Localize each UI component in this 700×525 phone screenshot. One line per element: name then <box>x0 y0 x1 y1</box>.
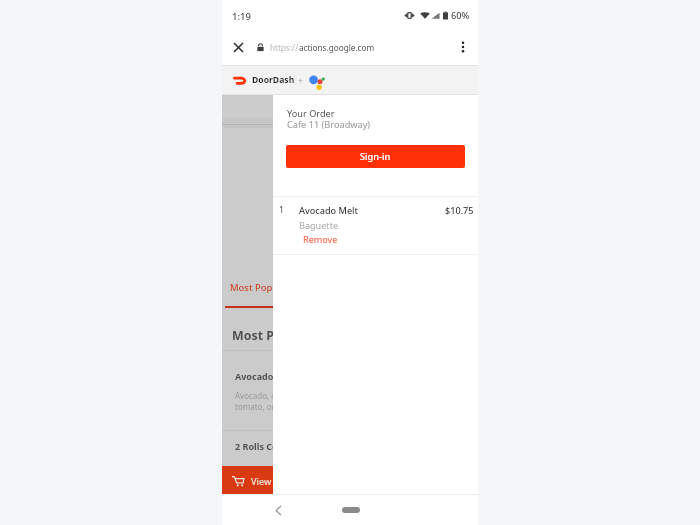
staticText: Most Popular <box>232 327 283 344</box>
staticText: + <box>298 74 304 86</box>
staticText: View Order <box>251 475 273 487</box>
staticText: Avocado Melt <box>299 204 359 216</box>
staticText: 60% <box>451 9 470 22</box>
staticText: Most Popular <box>230 281 281 294</box>
staticText: Baguette <box>299 219 339 231</box>
button[interactable]: Sign-in <box>286 145 465 168</box>
button[interactable]: Home <box>342 507 360 513</box>
button[interactable]: View Order <box>222 466 273 495</box>
staticText: $10.75 <box>445 204 474 216</box>
staticText: actions.google.com <box>299 42 375 53</box>
staticText: Your Order <box>287 107 335 120</box>
button[interactable]: Close <box>227 36 249 58</box>
staticText: 1:19 <box>232 10 251 23</box>
staticText: Sign-in <box>360 150 391 163</box>
staticText: Cafe 11 (Broadway) <box>287 118 371 131</box>
button[interactable]: Back <box>268 500 288 520</box>
staticText: 1 <box>279 204 285 216</box>
staticText: https:// <box>270 42 299 53</box>
staticText: Avocado Melt <box>235 370 286 382</box>
staticText: tomato, onion <box>235 401 286 412</box>
staticText: DoorDash <box>252 74 295 86</box>
staticText: Avocado, cheddar, <box>235 390 286 401</box>
staticText: 2 Rolls Combo <box>235 440 286 452</box>
button[interactable]: Remove <box>303 233 338 245</box>
button[interactable]: More options <box>452 36 474 58</box>
